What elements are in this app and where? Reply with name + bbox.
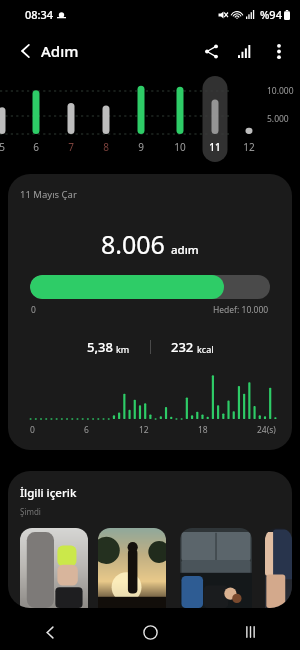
staticText: 232 [171,338,194,356]
staticText: 7 [59,140,83,154]
staticText: 10.000 [267,85,294,97]
staticText: 10 [168,140,192,154]
staticText: 18 [198,424,208,436]
button[interactable]: Back [8,33,44,69]
staticText: 11 Mayıs Çar [20,188,77,201]
button[interactable]: 11 Mayıs Çar [8,174,292,450]
staticText: 12 [237,140,261,154]
staticText: 6 [84,424,89,436]
staticText: 8.006 [101,227,165,261]
staticText: %94 [260,7,282,22]
staticText: 12 [139,424,149,436]
staticText: 8 [94,140,118,154]
button[interactable]: Related content [265,528,292,608]
staticText: 5.000 [267,113,289,125]
button[interactable]: Related content [180,528,252,608]
staticText: Hedef: 10.000 [213,304,269,316]
staticText: 0 [30,424,35,436]
staticText: km [116,343,130,355]
button[interactable]: Related content [20,528,88,608]
button[interactable]: Home [100,614,200,650]
staticText: Adım [41,41,79,61]
button[interactable]: Back [0,614,100,650]
staticText: 24(s) [257,424,276,436]
staticText: 5 [0,140,14,154]
button[interactable]: Share [194,34,228,68]
button[interactable]: Related content [98,528,166,608]
staticText: 08:34 [25,7,54,22]
staticText: 6 [24,140,48,154]
staticText: Şimdi [20,506,41,517]
staticText: İlgili içerik [20,485,77,501]
button[interactable]: More options [262,34,296,68]
staticText: 0 [31,304,36,316]
staticText: kcal [197,343,214,355]
staticText: 5,38 [87,338,113,356]
staticText: 11 [203,140,227,154]
staticText: adım [171,242,199,258]
staticText: 9 [129,140,153,154]
button[interactable]: Recent apps [200,614,300,650]
button[interactable]: Statistics [228,34,262,68]
